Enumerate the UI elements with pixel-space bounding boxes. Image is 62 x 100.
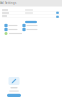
staticText: Mail Settings [0, 1, 16, 5]
button[interactable]: Toggle [56, 16, 59, 18]
button[interactable]: Compose [7, 94, 21, 97]
button[interactable]: Toggle [56, 12, 59, 14]
